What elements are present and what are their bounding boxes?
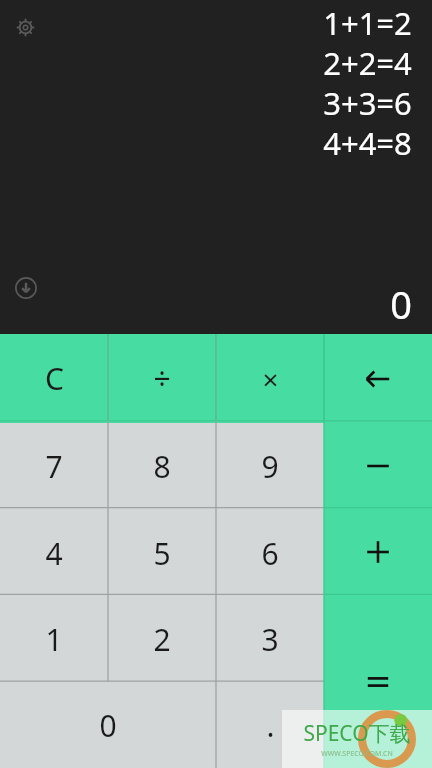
button[interactable]: 3 <box>216 596 324 682</box>
staticText: 3+3=6 <box>323 82 412 122</box>
staticText: 1 <box>45 619 63 660</box>
button[interactable]: Settings <box>10 12 40 42</box>
button[interactable]: 2 <box>108 596 216 682</box>
staticText: 2+2=4 <box>323 42 412 82</box>
staticText: ÷ <box>153 358 171 399</box>
staticText: 0 <box>99 705 117 746</box>
button[interactable]: Backspace <box>324 334 432 423</box>
staticText: SPECO下载 <box>303 719 411 748</box>
button[interactable]: 4 <box>0 510 108 596</box>
button[interactable]: C <box>0 334 108 423</box>
button[interactable]: 9 <box>216 423 324 510</box>
staticText: × <box>262 360 279 398</box>
button[interactable] <box>324 595 432 768</box>
button[interactable]: Show history <box>12 274 40 302</box>
staticText: 3 <box>261 619 279 660</box>
staticText: 4 <box>45 533 63 574</box>
button[interactable] <box>324 509 432 595</box>
staticText: 7 <box>45 446 63 487</box>
button[interactable]: × <box>216 334 324 423</box>
staticText: 9 <box>261 446 279 487</box>
staticText: 0 <box>390 278 412 330</box>
button[interactable]: 8 <box>108 423 216 510</box>
staticText: 1+1=2 <box>323 2 412 42</box>
button[interactable]: 5 <box>108 510 216 596</box>
staticText: 4+4=8 <box>323 122 412 162</box>
staticText: 8 <box>153 446 171 487</box>
staticText: 2 <box>153 619 171 660</box>
staticText: C <box>45 358 64 399</box>
button[interactable]: 6 <box>216 510 324 596</box>
button[interactable]: 7 <box>0 423 108 510</box>
staticText: WWW.SPECO.COM.CN <box>321 749 393 759</box>
button[interactable]: 0 <box>0 682 216 768</box>
staticText: 6 <box>261 533 279 574</box>
staticText: . <box>266 705 275 746</box>
staticText: 5 <box>153 533 171 574</box>
button[interactable]: . <box>216 682 324 768</box>
button[interactable]: ÷ <box>108 334 216 423</box>
button[interactable]: 1 <box>0 596 108 682</box>
button[interactable] <box>324 423 432 509</box>
